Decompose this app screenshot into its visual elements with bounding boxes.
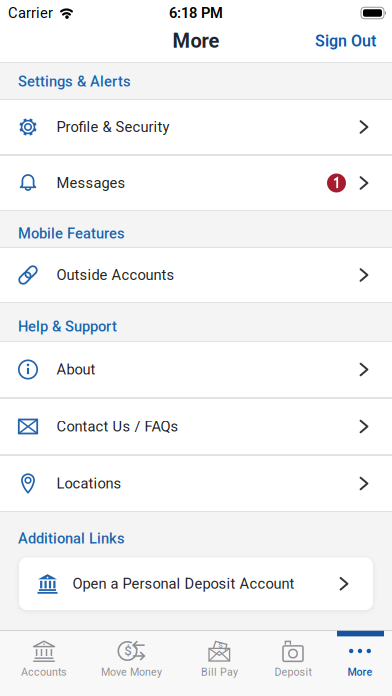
- staticText: More: [172, 30, 219, 52]
- button[interactable]: Contact Us / FAQs: [0, 399, 392, 454]
- staticText: Bill Pay: [201, 666, 238, 678]
- staticText: Mobile Features: [18, 225, 125, 242]
- staticText: Settings & Alerts: [18, 73, 131, 90]
- button[interactable]: $: [88, 640, 175, 678]
- button[interactable]: Deposit: [264, 640, 322, 678]
- staticText: Locations: [56, 475, 121, 492]
- staticText: $: [124, 643, 132, 658]
- staticText: More: [347, 666, 372, 678]
- staticText: Deposit: [274, 666, 311, 678]
- staticText: Move Money: [101, 666, 162, 678]
- staticText: $: [218, 640, 223, 649]
- staticText: Profile & Security: [56, 119, 169, 135]
- staticText: 6:18 PM: [169, 5, 223, 21]
- button[interactable]: More: [322, 640, 392, 678]
- staticText: Carrier: [8, 5, 53, 21]
- staticText: Open a Personal Deposit Account: [72, 575, 294, 592]
- button[interactable]: Accounts: [0, 640, 88, 678]
- button[interactable]: Open a Personal Deposit Account: [19, 557, 373, 610]
- staticText: Sign Out: [315, 32, 376, 50]
- button[interactable]: Messages: [0, 156, 392, 210]
- staticText: Outside Accounts: [56, 267, 174, 283]
- staticText: About: [56, 361, 95, 378]
- button[interactable]: About: [0, 342, 392, 397]
- button[interactable]: Profile & Security: [0, 100, 392, 154]
- button[interactable]: Sign Out: [315, 32, 376, 50]
- staticText: Help & Support: [18, 318, 117, 335]
- staticText: Additional Links: [18, 530, 125, 547]
- staticText: Accounts: [21, 666, 67, 678]
- staticText: Messages: [56, 175, 125, 191]
- button[interactable]: Locations: [0, 456, 392, 511]
- button[interactable]: Outside Accounts: [0, 248, 392, 302]
- button[interactable]: $: [175, 640, 264, 678]
- staticText: Contact Us / FAQs: [56, 418, 178, 435]
